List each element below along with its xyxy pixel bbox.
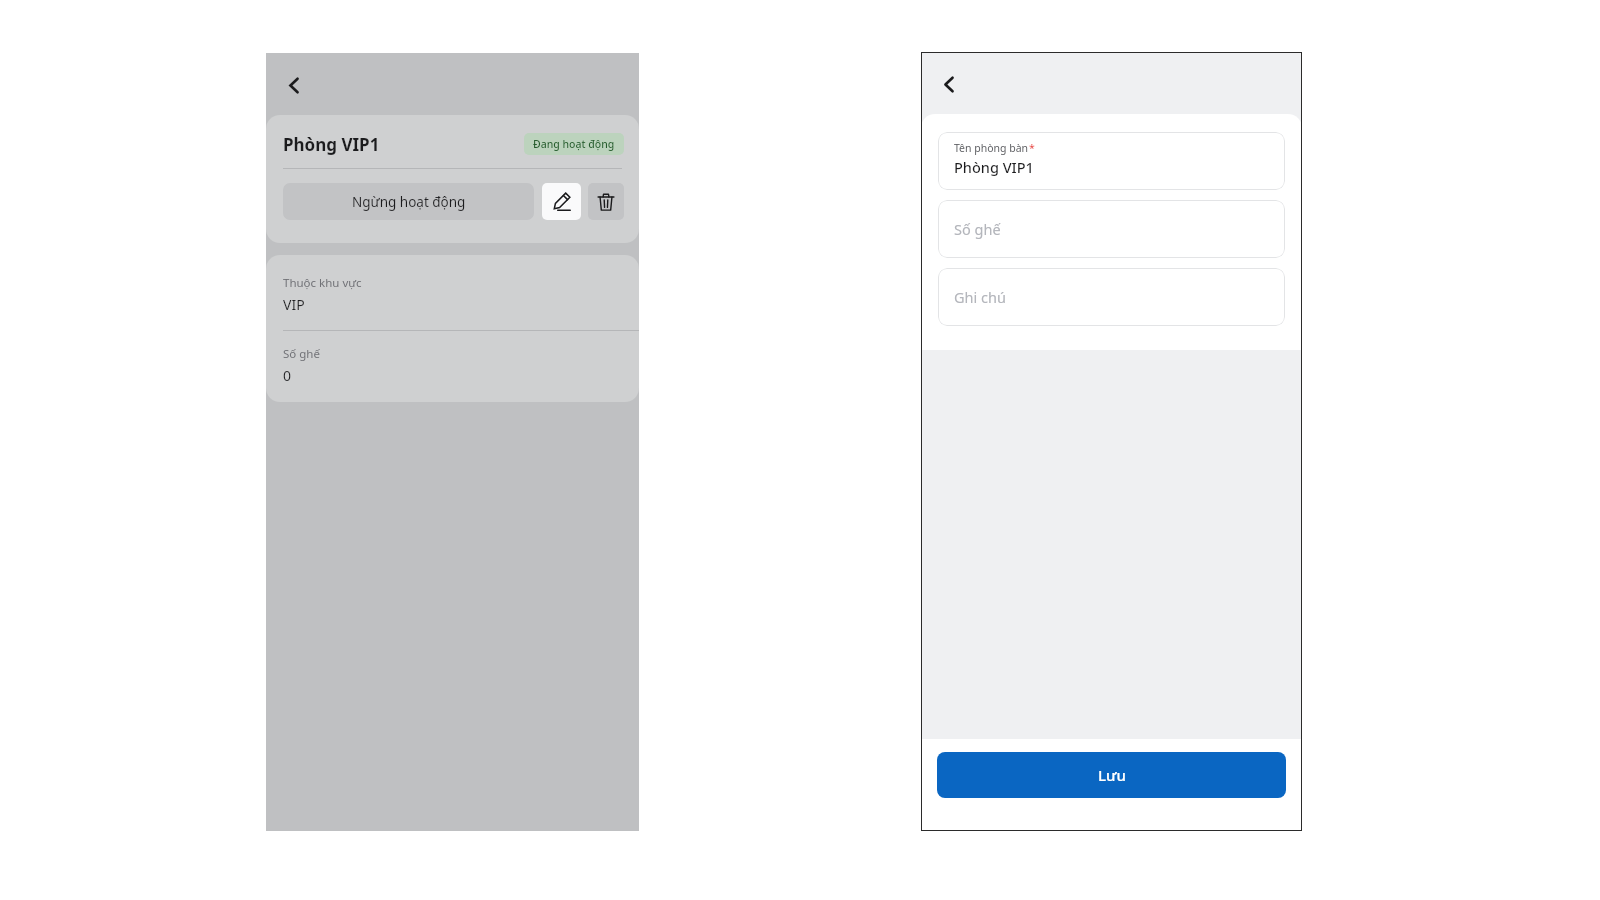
staticText: Ngừng hoạt động bbox=[352, 193, 466, 211]
staticText: Tên phòng bàn bbox=[954, 141, 1029, 155]
button[interactable]: Edit bbox=[542, 183, 581, 220]
staticText: * bbox=[1029, 141, 1035, 155]
staticText: Số ghế bbox=[283, 346, 320, 362]
staticText: 0 bbox=[283, 366, 292, 385]
staticText: Ghi chú bbox=[954, 287, 1006, 307]
staticText: Số ghế bbox=[954, 219, 1001, 239]
button[interactable]: Tên phòng bàn bbox=[938, 132, 1285, 190]
staticText: VIP bbox=[283, 295, 305, 314]
button[interactable]: Delete bbox=[588, 183, 624, 220]
staticText: Phòng VIP1 bbox=[954, 157, 1034, 177]
button[interactable]: Back bbox=[927, 62, 971, 106]
button[interactable]: Số ghế bbox=[938, 200, 1285, 258]
staticText: Lưu bbox=[1098, 765, 1126, 785]
button[interactable]: Ghi chú bbox=[938, 268, 1285, 326]
staticText: Thuộc khu vực bbox=[283, 275, 362, 291]
button[interactable]: Ngừng hoạt động bbox=[283, 183, 534, 220]
staticText: Phòng VIP1 bbox=[283, 133, 380, 156]
staticText: Đang hoạt động bbox=[533, 137, 615, 151]
button[interactable]: Lưu bbox=[937, 752, 1286, 798]
button[interactable]: Back bbox=[272, 63, 316, 107]
